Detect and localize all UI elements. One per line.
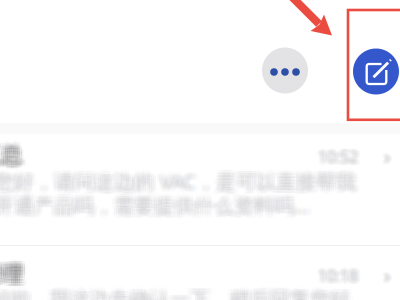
staticText: › [386,143,392,170]
staticText: 李经理 [0,264,19,290]
staticText: 10:18 [315,267,355,288]
staticText: 开通产品吗，需要提供什么资料吗… [0,195,312,221]
staticText: › [384,145,390,171]
staticText: 王总 [0,139,20,165]
staticText: 李经理 [0,259,21,286]
staticText: 您好，请问这边的 VAC，是可以直接帮我 [0,165,358,192]
staticText: 10:52 [321,144,361,165]
staticText: 10:52 [317,144,357,165]
staticText: 王总 [0,143,20,170]
staticText: 10:18 [317,264,357,285]
staticText: › [386,142,392,169]
staticText: 李经理 [0,261,23,287]
staticText: › [383,260,389,287]
staticText: 王总 [0,142,16,168]
staticText: 王总 [0,139,26,165]
staticText: 好的，我这边先确认一下，稍后回复您好 [0,290,348,300]
button[interactable]: Compose [353,48,399,94]
staticText: 10:18 [315,264,355,285]
staticText: 好的，我这边先确认一下，稍后回复您好 [0,288,350,300]
staticText: 开通产品吗，需要提供什么资料吗… [0,193,310,220]
staticText: 王总 [0,143,22,170]
staticText: 李经理 [0,264,27,290]
staticText: 好的，我这边先确认一下，稍后回复您好 [0,287,345,300]
staticText: 王总 [0,140,18,167]
staticText: 李经理 [0,258,21,284]
staticText: › [386,263,392,290]
staticText: 10:18 [318,267,358,288]
staticText: 10:18 [322,265,362,286]
staticText: 王总 [0,142,27,168]
staticText: 开通产品吗，需要提供什么资料吗… [0,192,315,219]
staticText: 好的，我这边先确认一下，稍后回复您好 [0,284,350,300]
staticText: 10:18 [319,265,359,286]
staticText: 10:18 [317,265,357,286]
staticText: 开通产品吗，需要提供什么资料吗… [0,193,312,220]
staticText: 李经理 [0,264,25,290]
staticText: 王总 [0,145,24,171]
staticText: 开通产品吗，需要提供什么资料吗… [0,188,310,214]
staticText: 李经理 [0,262,21,289]
staticText: 王总 [0,140,26,167]
staticText: 10:18 [315,263,355,284]
staticText: 10:52 [315,144,355,165]
staticText: 10:18 [319,263,359,284]
staticText: › [383,145,389,171]
staticText: 您好，请问这边的 VAC，是可以直接帮我 [0,168,356,195]
staticText: › [385,145,391,171]
staticText: › [386,261,392,288]
staticText: › [385,263,391,290]
button[interactable]: 王总 [0,140,400,240]
staticText: › [385,261,391,288]
staticText: 开通产品吗，需要提供什么资料吗… [0,192,305,219]
staticText: 好的，我这边先确认一下，稍后回复您好 [0,286,353,300]
staticText: › [386,262,392,289]
staticText: 10:18 [317,266,357,287]
staticText: 好的，我这边先确认一下，稍后回复您好 [0,288,352,300]
button[interactable]: More [262,47,308,93]
staticText: 王总 [0,139,24,165]
staticText: › [382,145,388,171]
staticText: › [384,261,390,288]
staticText: › [380,262,386,289]
staticText: 李经理 [0,259,27,286]
staticText: 开通产品吗，需要提供什么资料吗… [0,195,307,221]
staticText: 好的，我这边先确认一下，稍后回复您好 [0,288,353,300]
staticText: 10:18 [318,265,358,286]
staticText: 李经理 [0,261,19,287]
staticText: 开通产品吗，需要提供什么资料吗… [0,189,307,216]
staticText: 王总 [0,145,18,171]
staticText: › [380,143,386,170]
staticText: 10:18 [315,266,355,287]
staticText: 10:18 [318,268,358,289]
staticText: 10:18 [321,265,361,286]
button[interactable]: 李经理 [0,259,400,300]
staticText: 王总 [0,143,26,170]
staticText: 您好，请问这边的 VAC，是可以直接帮我 [0,165,359,192]
staticText: 10:18 [319,267,359,288]
staticText: › [385,141,391,168]
staticText: 好的，我这边先确认一下，稍后回复您好 [0,287,348,300]
staticText: › [385,142,391,169]
staticText: 10:52 [318,143,358,164]
staticText: 开通产品吗，需要提供什么资料吗… [0,189,313,216]
staticText: 您好，请问这边的 VAC，是可以直接帮我 [0,165,354,192]
staticText: 10:18 [319,266,359,287]
staticText: › [384,143,390,170]
staticText: 10:52 [319,145,359,166]
staticText: 好的，我这边先确认一下，稍后回复您好 [0,286,347,300]
staticText: 李经理 [0,258,27,284]
staticText: 王总 [0,142,18,168]
staticText: › [386,144,392,171]
staticText: 李经理 [0,261,17,287]
staticText: › [386,141,392,168]
staticText: 王总 [0,142,22,168]
staticText: 好的，我这边先确认一下，稍后回复您好 [0,288,347,300]
staticText: 10:18 [318,264,358,285]
staticText: 李经理 [0,259,23,286]
staticText: 开通产品吗，需要提供什么资料吗… [0,192,310,219]
staticText: 开通产品吗，需要提供什么资料吗… [0,189,310,216]
staticText: 您好，请问这边的 VAC，是可以直接帮我 [0,168,353,195]
staticText: 您好，请问这边的 VAC，是可以直接帮我 [0,164,356,190]
staticText: 李经理 [0,257,23,283]
